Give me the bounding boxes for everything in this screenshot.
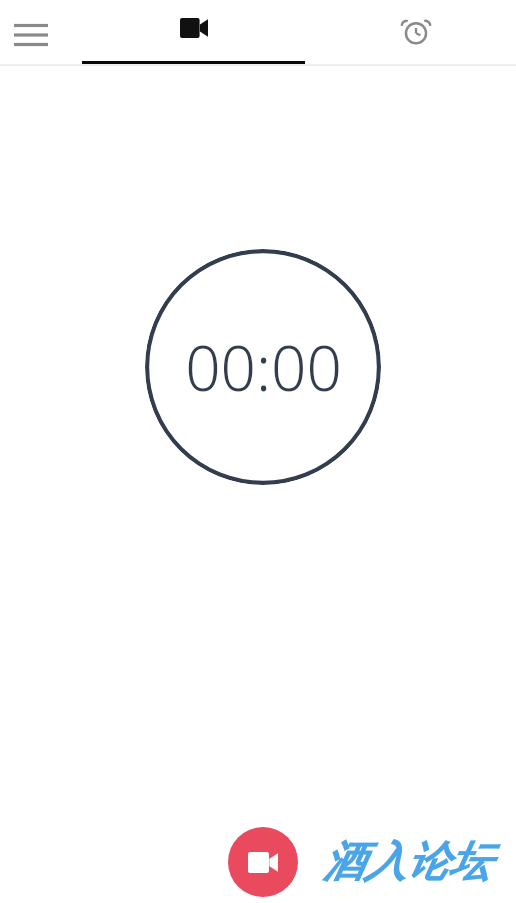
button[interactable]: Video recorder tab bbox=[82, 0, 305, 64]
staticText: 酒入论坛 bbox=[322, 836, 490, 889]
button[interactable]: Alarm bbox=[389, 4, 443, 58]
button[interactable]: 00:00 bbox=[145, 249, 381, 485]
staticText: 00:00 bbox=[185, 325, 342, 409]
button[interactable]: Open navigation menu bbox=[4, 8, 58, 62]
button[interactable]: Start recording bbox=[228, 827, 298, 897]
